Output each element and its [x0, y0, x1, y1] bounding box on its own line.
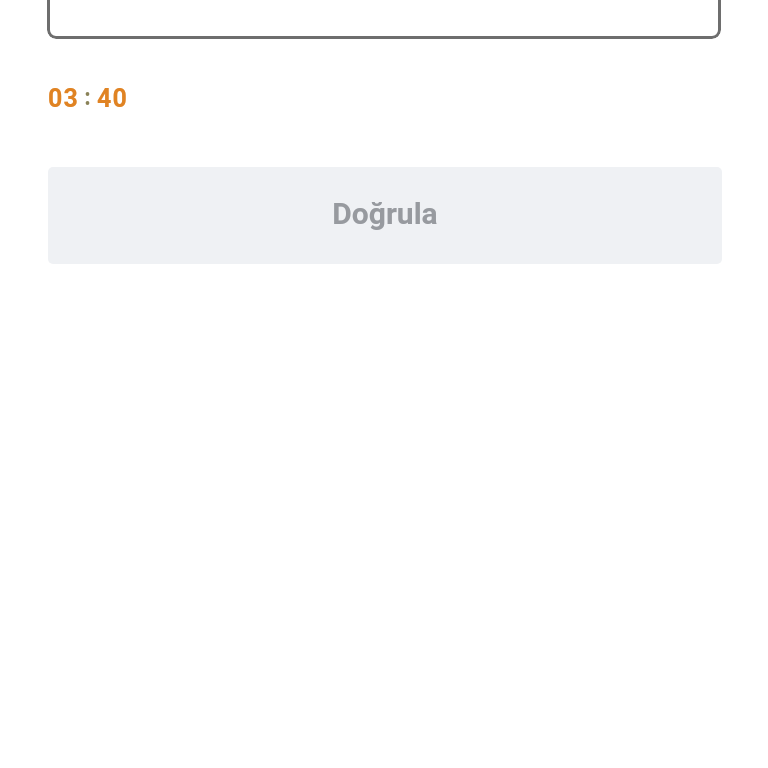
button[interactable]: Doğrulama kodu [47, 0, 721, 39]
staticText: 03 [48, 84, 80, 113]
staticText: 40 [97, 84, 129, 113]
button[interactable]: Doğrula [48, 167, 722, 264]
button[interactable]: 03 [40, 76, 150, 118]
staticText: Doğrula [332, 196, 438, 231]
